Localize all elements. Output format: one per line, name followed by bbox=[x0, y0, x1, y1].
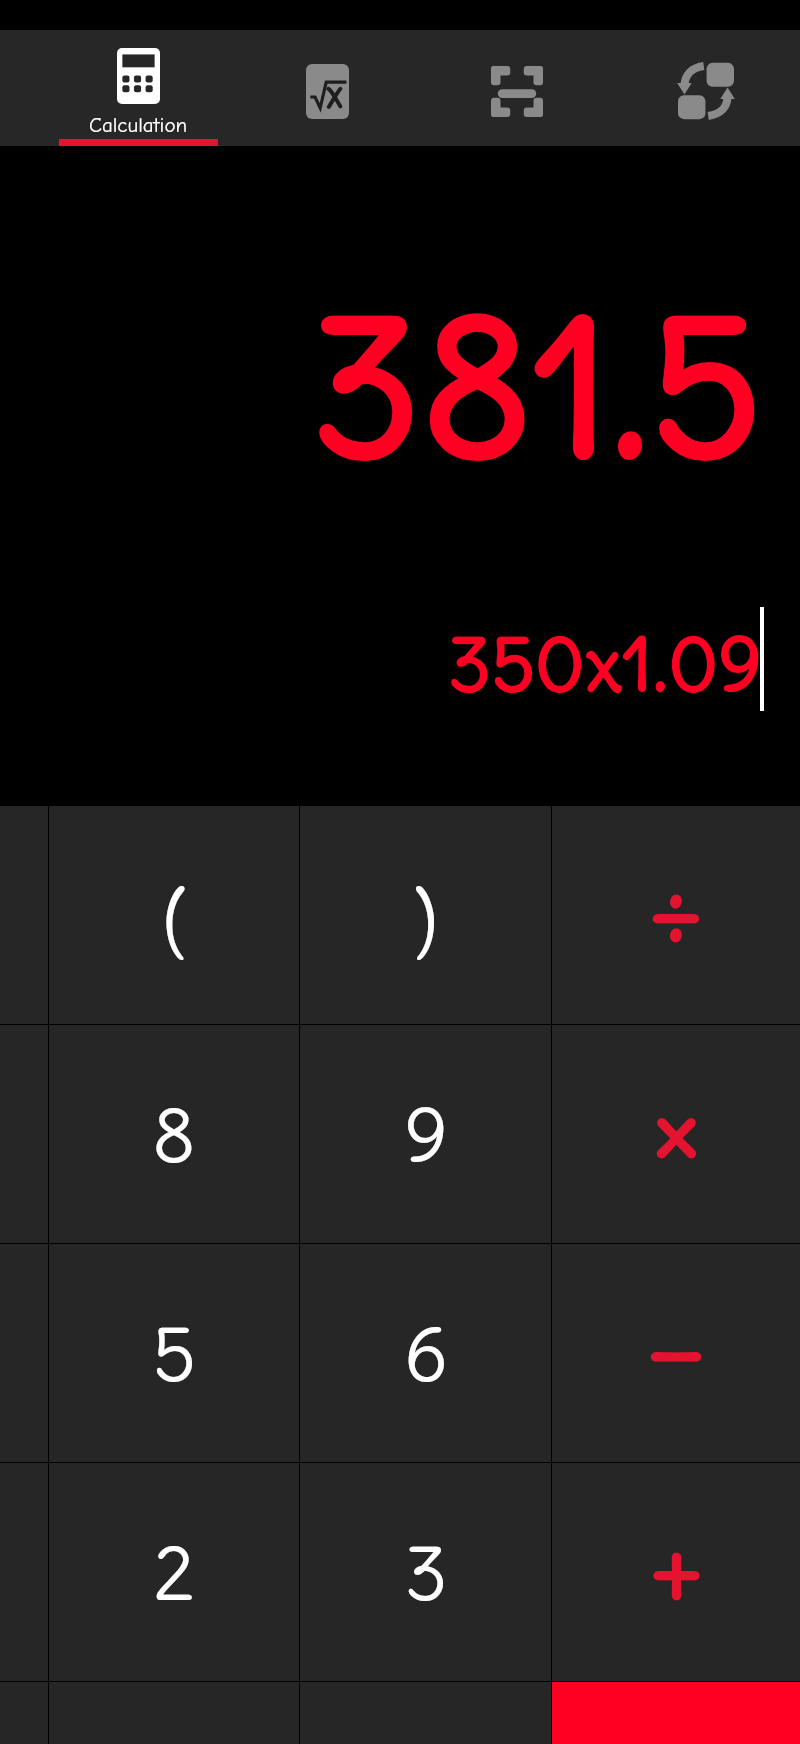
staticText: 3 bbox=[404, 1525, 448, 1620]
button[interactable]: ÷ bbox=[552, 806, 800, 1024]
staticText: 5 bbox=[152, 1306, 196, 1401]
staticText: Calculation bbox=[89, 113, 188, 137]
staticText: 381.5 bbox=[311, 264, 762, 508]
button[interactable]: Calculation bbox=[43, 30, 233, 146]
button[interactable]: × bbox=[552, 1025, 800, 1243]
staticText: 6 bbox=[404, 1306, 448, 1401]
button[interactable]: 8 bbox=[49, 1025, 299, 1243]
button[interactable]: 2 bbox=[49, 1463, 299, 1681]
staticText: 8 bbox=[152, 1087, 196, 1182]
button[interactable]: Scan bbox=[422, 30, 611, 146]
button[interactable]: − bbox=[552, 1244, 800, 1462]
button[interactable]: Converter bbox=[611, 30, 800, 146]
button[interactable]: + bbox=[552, 1463, 800, 1681]
staticText: 2 bbox=[153, 1525, 195, 1620]
staticText: 350x1.09 bbox=[448, 616, 762, 711]
button[interactable]: ) bbox=[300, 806, 551, 1024]
staticText: ) bbox=[414, 868, 438, 963]
button[interactable]: ( bbox=[49, 806, 299, 1024]
staticText: ( bbox=[163, 868, 186, 963]
staticText: − bbox=[644, 1284, 708, 1410]
staticText: 9 bbox=[404, 1087, 448, 1182]
button[interactable]: 5 bbox=[49, 1244, 299, 1462]
button[interactable]: 3 bbox=[300, 1463, 551, 1681]
button[interactable]: 9 bbox=[300, 1025, 551, 1243]
staticText: + bbox=[650, 1503, 703, 1629]
staticText: ÷ bbox=[648, 846, 704, 972]
button[interactable]: 6 bbox=[300, 1244, 551, 1462]
button[interactable]: Scientific bbox=[233, 30, 422, 146]
staticText: × bbox=[651, 1065, 702, 1191]
